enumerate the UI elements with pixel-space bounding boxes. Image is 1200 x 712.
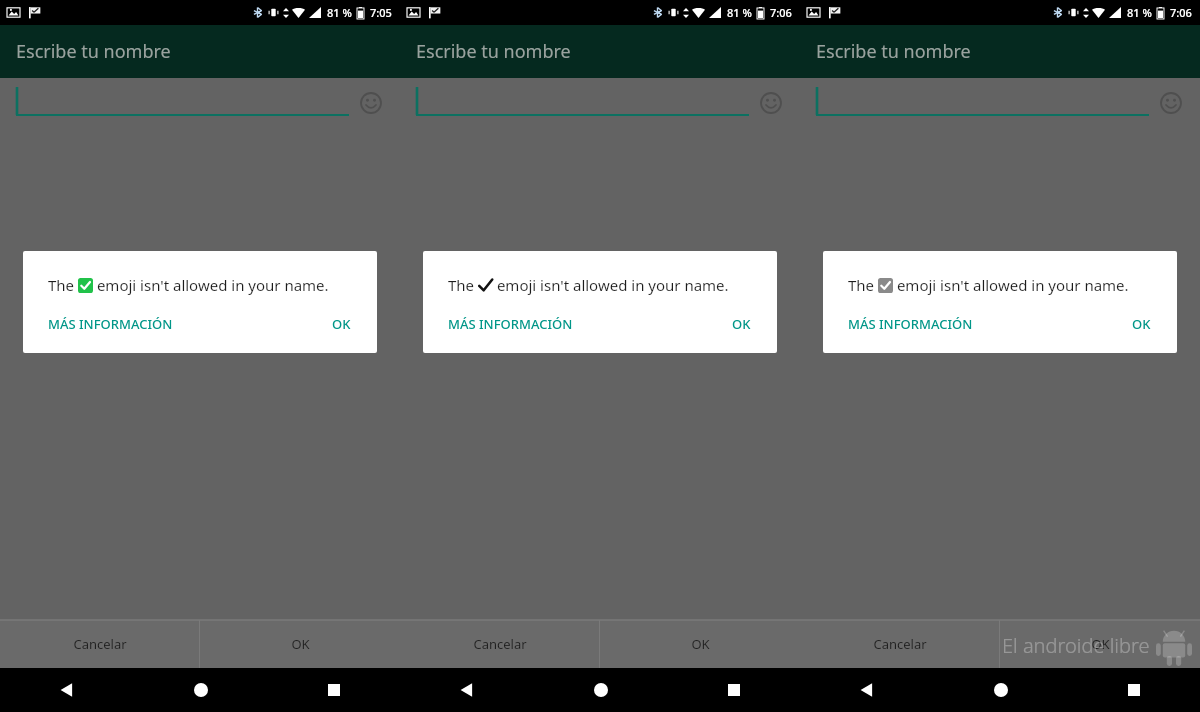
staticText: El androide libre [1002, 632, 1150, 659]
staticText: MÁS INFORMACIÓN [48, 315, 173, 333]
button[interactable]: Emoji [754, 86, 788, 120]
staticText: OK [1132, 315, 1151, 333]
staticText: OK [291, 635, 310, 653]
button[interactable] [14, 78, 349, 128]
button[interactable] [814, 78, 1149, 128]
button[interactable]: OK [1000, 620, 1200, 668]
button[interactable]: Cancelar [800, 620, 999, 668]
staticText: OK [732, 315, 751, 333]
staticText: Escribe tu nombre [16, 39, 171, 64]
button[interactable]: Emoji [354, 86, 388, 120]
button[interactable] [414, 78, 749, 128]
button[interactable]: Home [134, 668, 267, 712]
staticText: emoji isn't allowed in your name. [493, 275, 729, 295]
staticText: MÁS INFORMACIÓN [848, 315, 973, 333]
staticText: The [448, 275, 478, 295]
button[interactable]: Home [934, 668, 1067, 712]
button[interactable]: Back [800, 668, 934, 712]
staticText: Cancelar [873, 635, 927, 653]
button[interactable]: MÁS INFORMACIÓN [448, 313, 573, 335]
staticText: The [848, 275, 878, 295]
staticText: OK [691, 635, 710, 653]
button[interactable]: Home [534, 668, 667, 712]
staticText: 7:05 [370, 5, 392, 20]
staticText: The [48, 275, 78, 295]
staticText: OK [332, 315, 351, 333]
staticText: Escribe tu nombre [416, 39, 571, 64]
staticText: Escribe tu nombre [816, 39, 971, 64]
staticText: emoji isn't allowed in your name. [893, 275, 1129, 295]
button[interactable]: OK [200, 620, 400, 668]
button[interactable]: Emoji [1154, 86, 1188, 120]
staticText: emoji isn't allowed in your name. [93, 275, 329, 295]
staticText: Cancelar [73, 635, 127, 653]
button[interactable]: OK [724, 313, 759, 335]
button[interactable]: MÁS INFORMACIÓN [48, 313, 173, 335]
staticText: OK [1091, 635, 1110, 653]
button[interactable]: OK [1124, 313, 1159, 335]
button[interactable]: OK [324, 313, 359, 335]
button[interactable]: Cancelar [400, 620, 599, 668]
button[interactable]: OK [600, 620, 800, 668]
staticText: 81 % [1127, 5, 1152, 20]
staticText: 7:06 [1170, 5, 1192, 20]
button[interactable]: Back [0, 668, 134, 712]
staticText: 81 % [727, 5, 752, 20]
staticText: 7:06 [770, 5, 792, 20]
staticText: MÁS INFORMACIÓN [448, 315, 573, 333]
button[interactable]: Cancelar [0, 620, 199, 668]
button[interactable]: MÁS INFORMACIÓN [848, 313, 973, 335]
button[interactable]: Recent apps [667, 668, 800, 712]
staticText: Cancelar [473, 635, 527, 653]
button[interactable]: Recent apps [1067, 668, 1200, 712]
staticText: 81 % [327, 5, 352, 20]
button[interactable]: Recent apps [267, 668, 400, 712]
button[interactable]: Back [400, 668, 534, 712]
